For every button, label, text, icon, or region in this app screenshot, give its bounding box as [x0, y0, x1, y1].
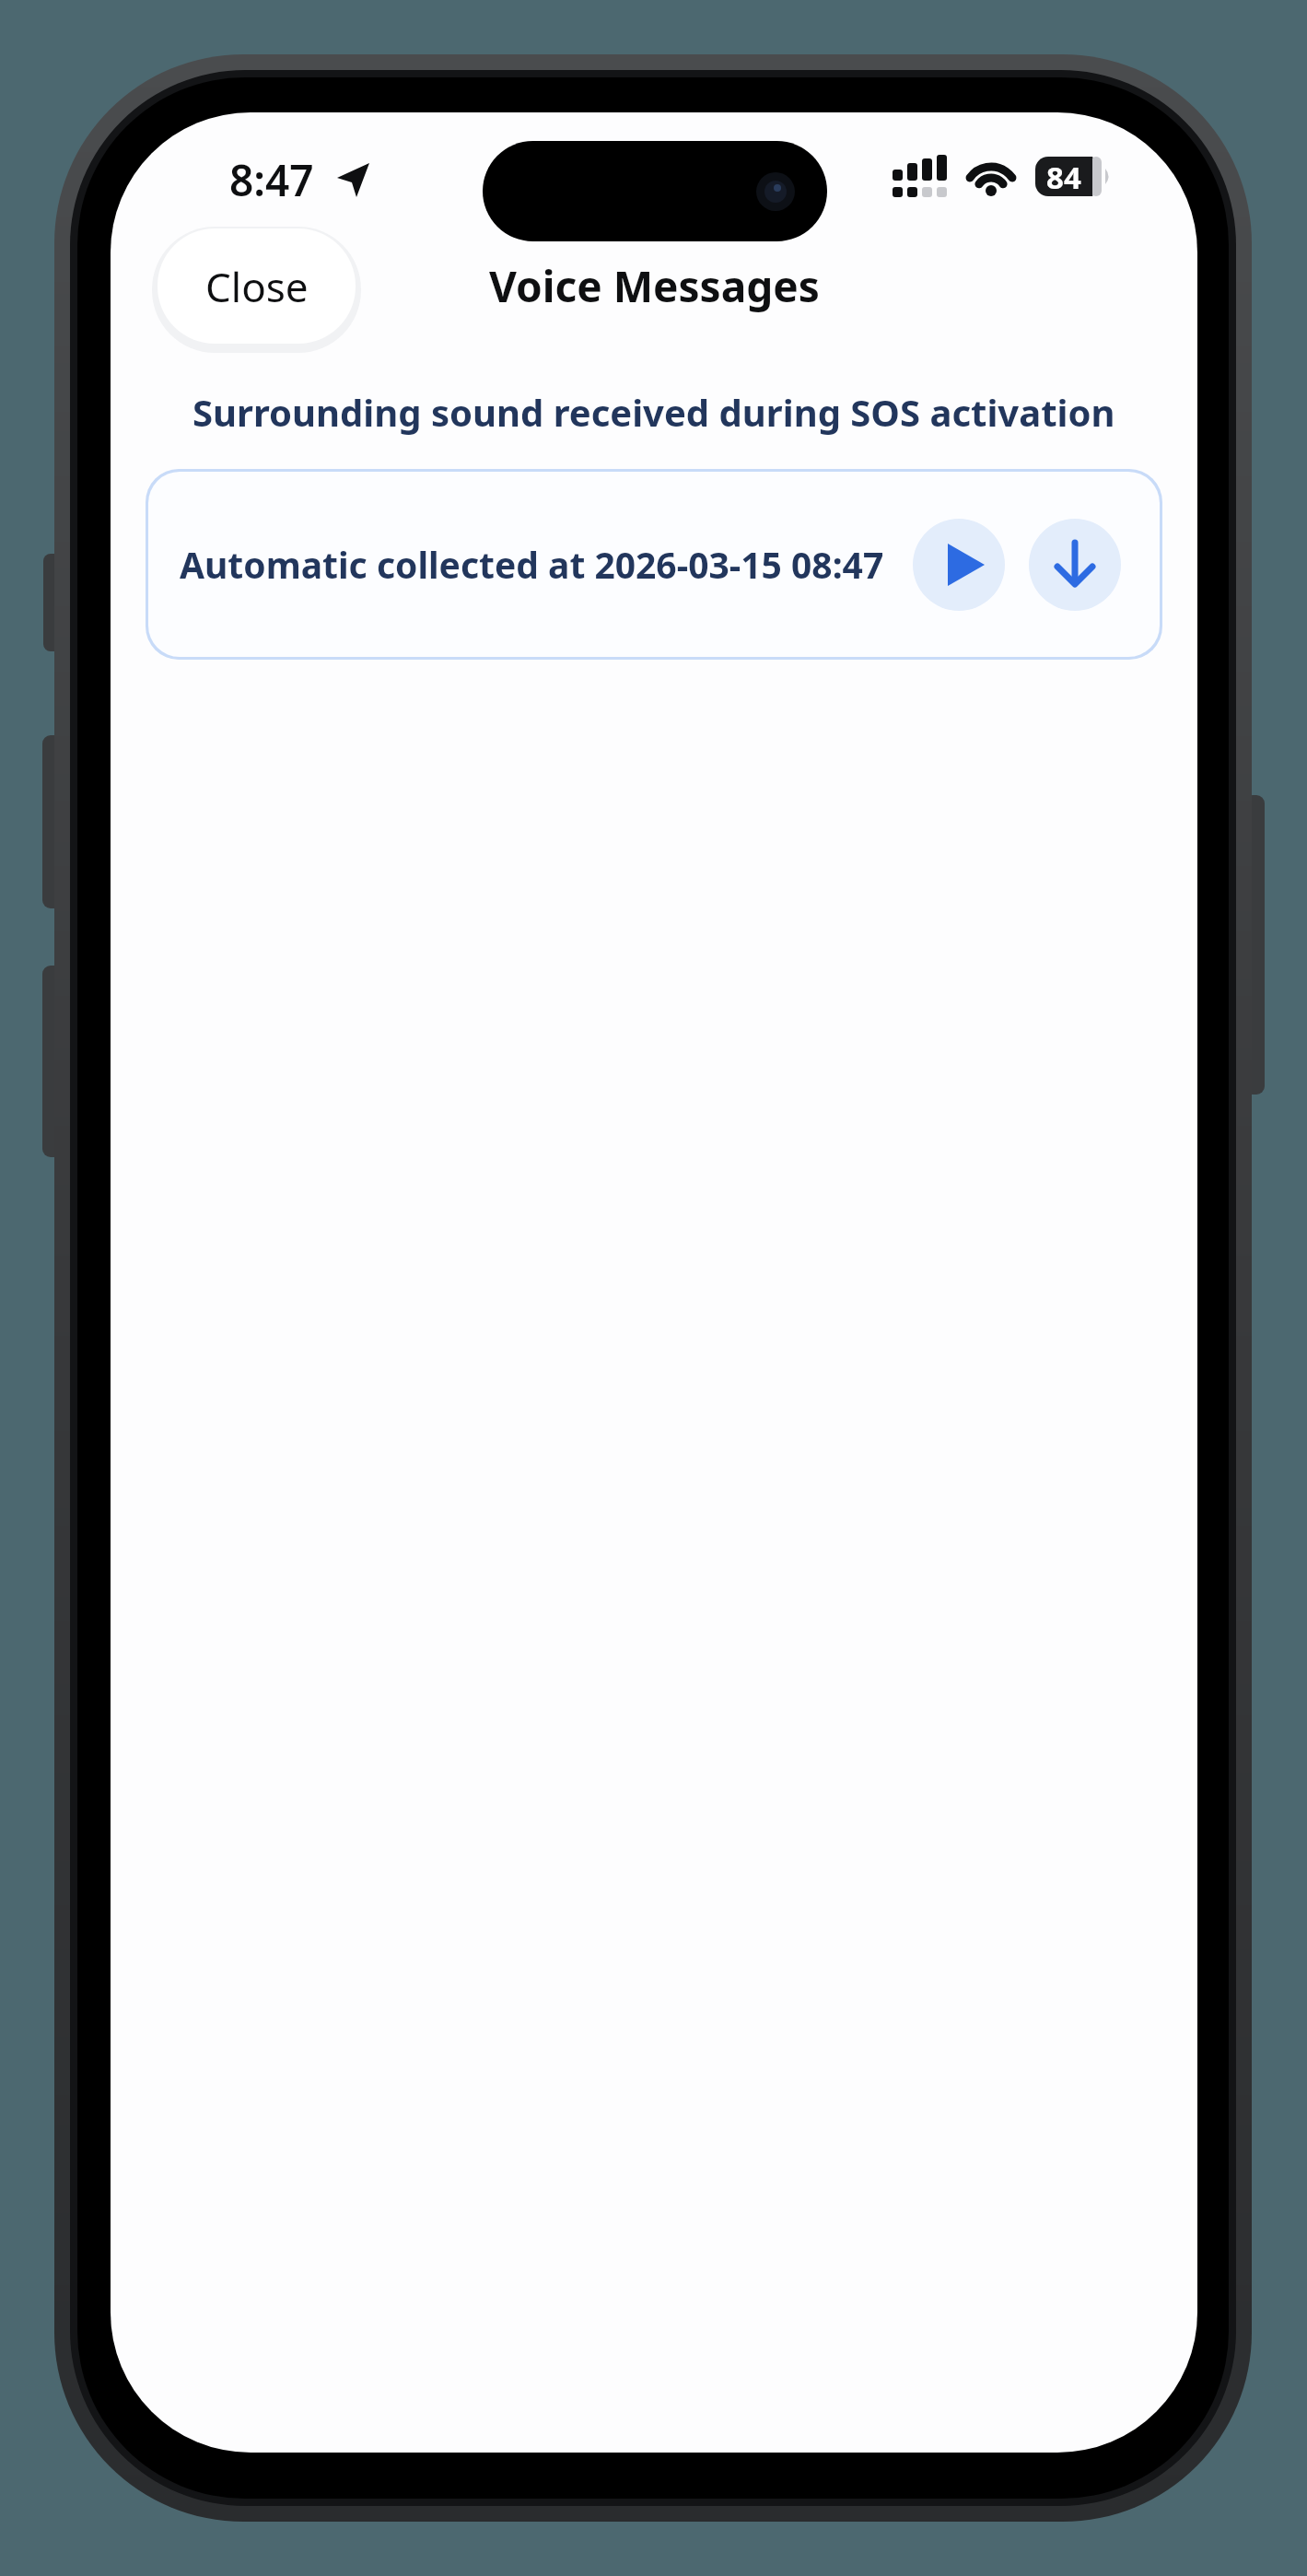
staticText: Close: [205, 259, 309, 314]
button[interactable]: Close: [158, 228, 356, 344]
staticText: Surrounding sound received during SOS ac…: [193, 387, 1115, 437]
staticText: 8:47: [229, 151, 314, 206]
staticText: Automatic collected at 2026-03-15 08:47: [180, 540, 884, 589]
button[interactable]: [1029, 519, 1121, 611]
staticText: 84: [1046, 157, 1081, 196]
button[interactable]: [913, 519, 1005, 611]
staticText: Voice Messages: [489, 257, 820, 315]
button[interactable]: Automatic collected at 2026-03-15 08:47: [146, 469, 1162, 660]
